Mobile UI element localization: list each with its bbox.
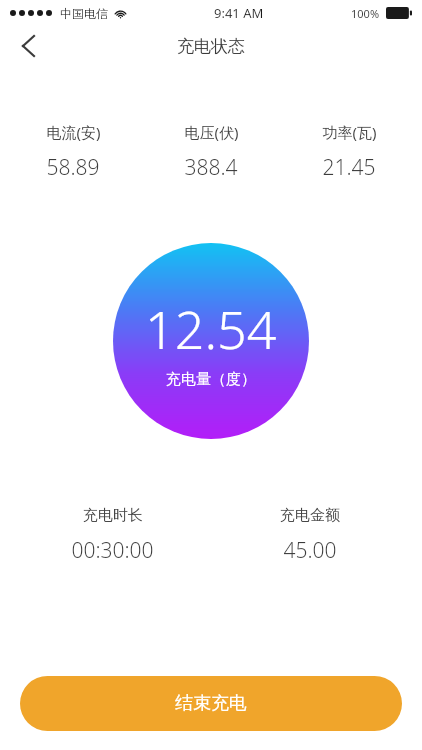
button[interactable]: Back xyxy=(8,26,48,66)
staticText: 45.00 xyxy=(283,536,337,565)
staticText: 58.89 xyxy=(46,153,100,182)
staticText: 充电金额 xyxy=(280,506,340,525)
button[interactable]: 结束充电 xyxy=(20,676,402,731)
staticText: 9:41 AM xyxy=(214,4,264,22)
staticText: 结束充电 xyxy=(175,692,247,715)
staticText: 功率(瓦) xyxy=(322,122,377,142)
staticText: 00:30:00 xyxy=(71,536,154,565)
staticText: 388.4 xyxy=(184,153,238,182)
staticText: 充电量（度） xyxy=(166,370,256,389)
staticText: 充电时长 xyxy=(83,506,143,525)
staticText: 12.54 xyxy=(145,293,277,364)
staticText: 21.45 xyxy=(322,153,376,182)
staticText: 充电状态 xyxy=(177,36,245,57)
staticText: 中国电信 xyxy=(60,6,108,21)
staticText: 电流(安) xyxy=(46,122,101,142)
staticText: 100% xyxy=(351,6,380,21)
staticText: 电压(伏) xyxy=(184,122,239,142)
